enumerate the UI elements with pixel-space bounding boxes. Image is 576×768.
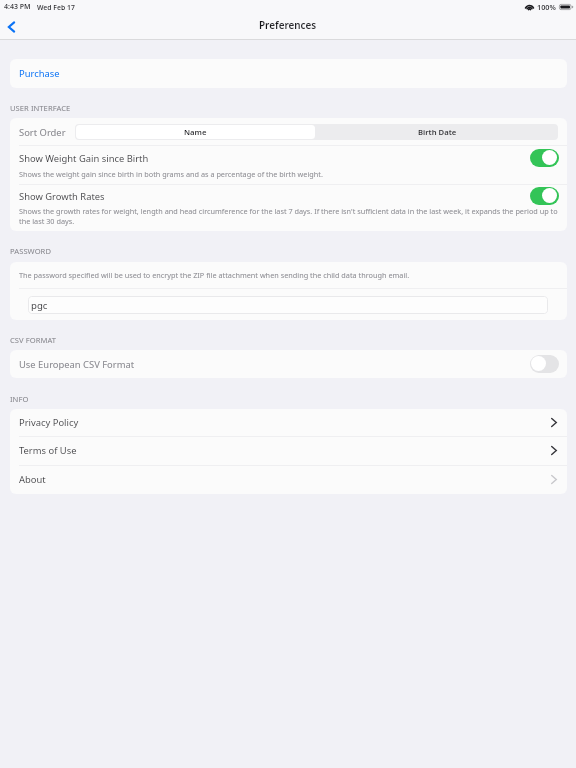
staticText: Privacy Policy [19,416,79,429]
button[interactable]: Back [3,19,19,35]
staticText: Show Weight Gain since Birth [19,152,530,165]
staticText: The password specified will be used to e… [19,270,410,280]
button[interactable]: Purchase [10,59,567,88]
staticText: INFO [10,394,29,404]
staticText: Shows the growth rates for weight, lengt… [19,206,558,226]
staticText: Terms of Use [19,444,77,457]
button[interactable]: Toggle on [530,149,559,167]
button[interactable]: Show Weight Gain since Birth [10,146,567,184]
button[interactable]: Birth Date [316,124,558,140]
staticText: Use European CSV Format [19,358,135,371]
staticText: 100% [537,2,556,12]
button[interactable]: About [19,465,557,494]
staticText: Preferences [259,18,317,31]
staticText: Purchase [19,67,60,80]
staticText: pgc [31,299,48,312]
staticText: Shows the weight gain since birth in bot… [19,169,323,179]
button[interactable]: pgc [28,296,548,314]
button[interactable]: Show Growth Rates [10,185,567,231]
button[interactable]: Name [76,125,315,139]
button[interactable]: Toggle on [530,187,559,205]
staticText: 4:43 PM [4,2,31,12]
button[interactable]: Toggle off [530,355,559,373]
staticText: Wed Feb 17 [37,3,75,12]
staticText: Name [184,127,207,137]
staticText: About [19,473,46,486]
button[interactable]: Use European CSV Format [19,350,559,378]
staticText: PASSWORD [10,246,51,256]
staticText: Sort Order [19,126,66,139]
staticText: CSV FORMAT [10,335,57,345]
staticText: Birth Date [418,127,457,137]
staticText: USER INTERFACE [10,103,71,113]
button[interactable]: Privacy Policy [19,409,557,436]
staticText: Show Growth Rates [19,190,530,203]
button[interactable]: Terms of Use [19,436,557,465]
